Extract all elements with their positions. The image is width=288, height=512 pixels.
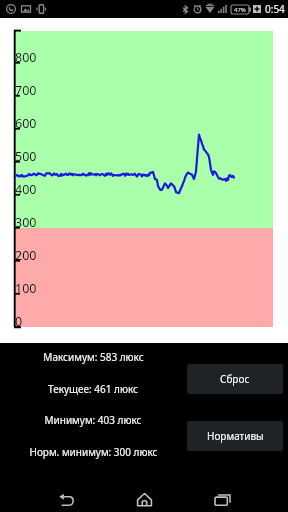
staticText: Норм. минимум: 300 люкс [29, 445, 158, 459]
staticText: 0:54 [265, 2, 285, 16]
staticText: 700 [15, 82, 37, 99]
staticText: Сброс [220, 372, 250, 386]
staticText: 500 [15, 148, 37, 165]
staticText: 400 [15, 181, 37, 198]
staticText: 300 [15, 214, 37, 231]
staticText: 600 [15, 115, 37, 132]
staticText: 200 [15, 247, 37, 264]
button[interactable]: Back [46, 479, 86, 512]
staticText: 100 [15, 280, 37, 297]
staticText: 0 [15, 313, 23, 330]
staticText: Минимум: 403 люкс [44, 413, 142, 427]
button[interactable]: Сброс [187, 364, 283, 394]
staticText: Максимум: 583 люкс [43, 350, 144, 364]
button[interactable]: Нормативы [187, 421, 283, 451]
button[interactable]: Home [124, 479, 164, 512]
staticText: 800 [15, 49, 37, 66]
staticText: Текущее: 461 люкс [48, 382, 138, 396]
button[interactable]: Recent apps [202, 479, 242, 512]
staticText: 47% [234, 6, 246, 14]
staticText: Нормативы [207, 429, 264, 443]
